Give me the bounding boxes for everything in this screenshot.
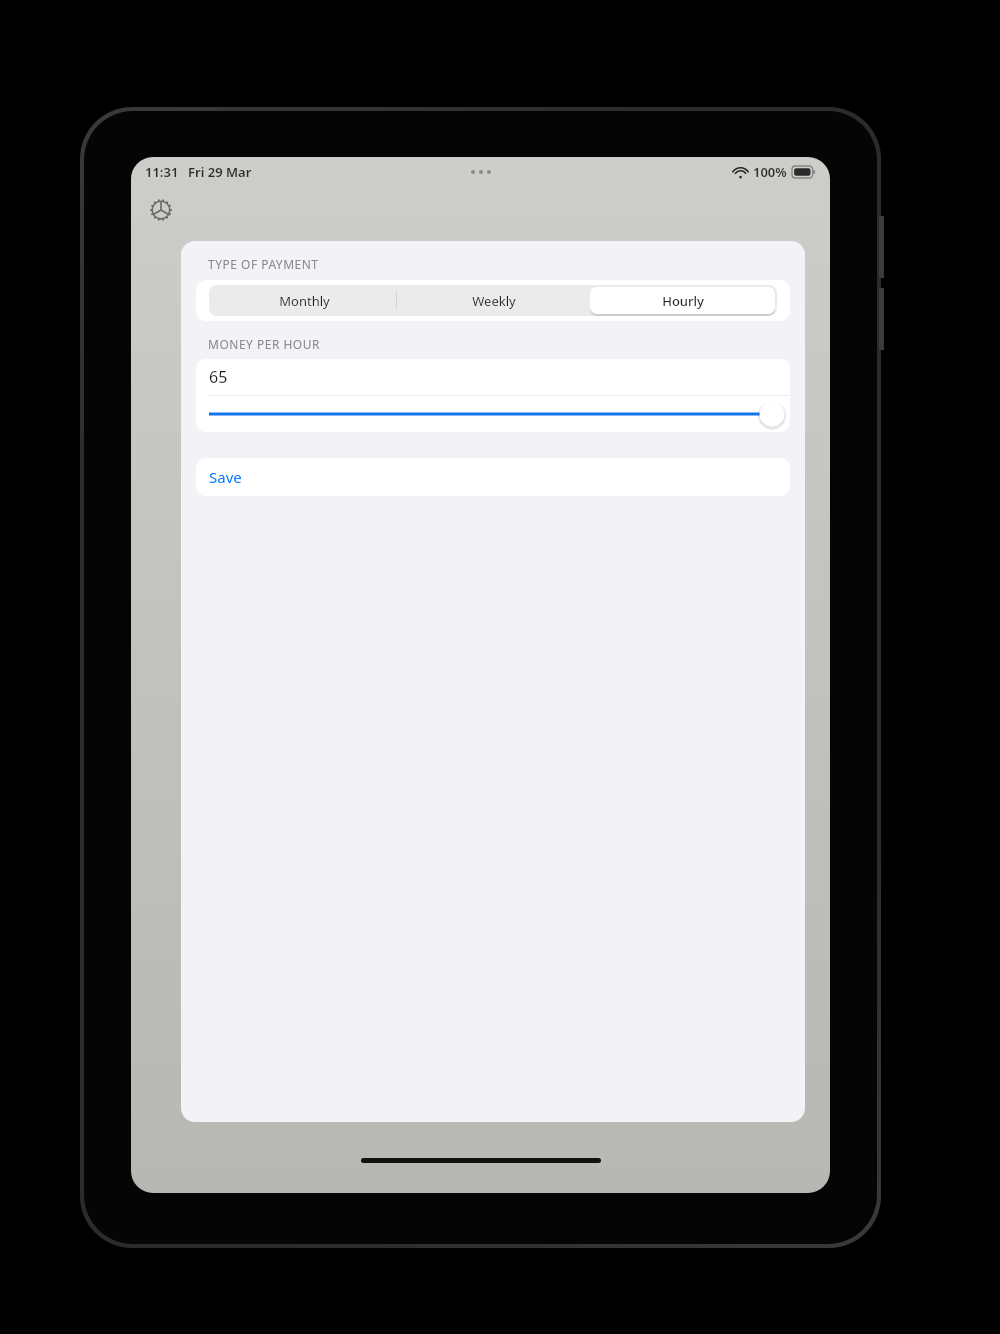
staticText: Save xyxy=(209,467,242,487)
button[interactable]: Save xyxy=(196,458,790,496)
staticText: Fri 29 Mar xyxy=(188,163,252,181)
button[interactable]: Hourly xyxy=(590,287,775,314)
button[interactable]: Settings xyxy=(143,192,179,228)
staticText: TYPE OF PAYMENT xyxy=(208,256,319,272)
staticText: 100% xyxy=(753,163,787,181)
staticText: Hourly xyxy=(662,292,704,310)
button[interactable]: Weekly xyxy=(401,287,586,314)
staticText: Weekly xyxy=(472,292,516,310)
staticText: MONEY PER HOUR xyxy=(208,336,320,352)
staticText: 65 xyxy=(209,366,228,388)
button[interactable]: Rate slider xyxy=(196,396,790,432)
staticText: 11:31 xyxy=(145,163,179,181)
button[interactable]: Monthly xyxy=(211,287,397,314)
staticText: Monthly xyxy=(279,292,330,310)
button[interactable]: 65 xyxy=(196,359,790,395)
